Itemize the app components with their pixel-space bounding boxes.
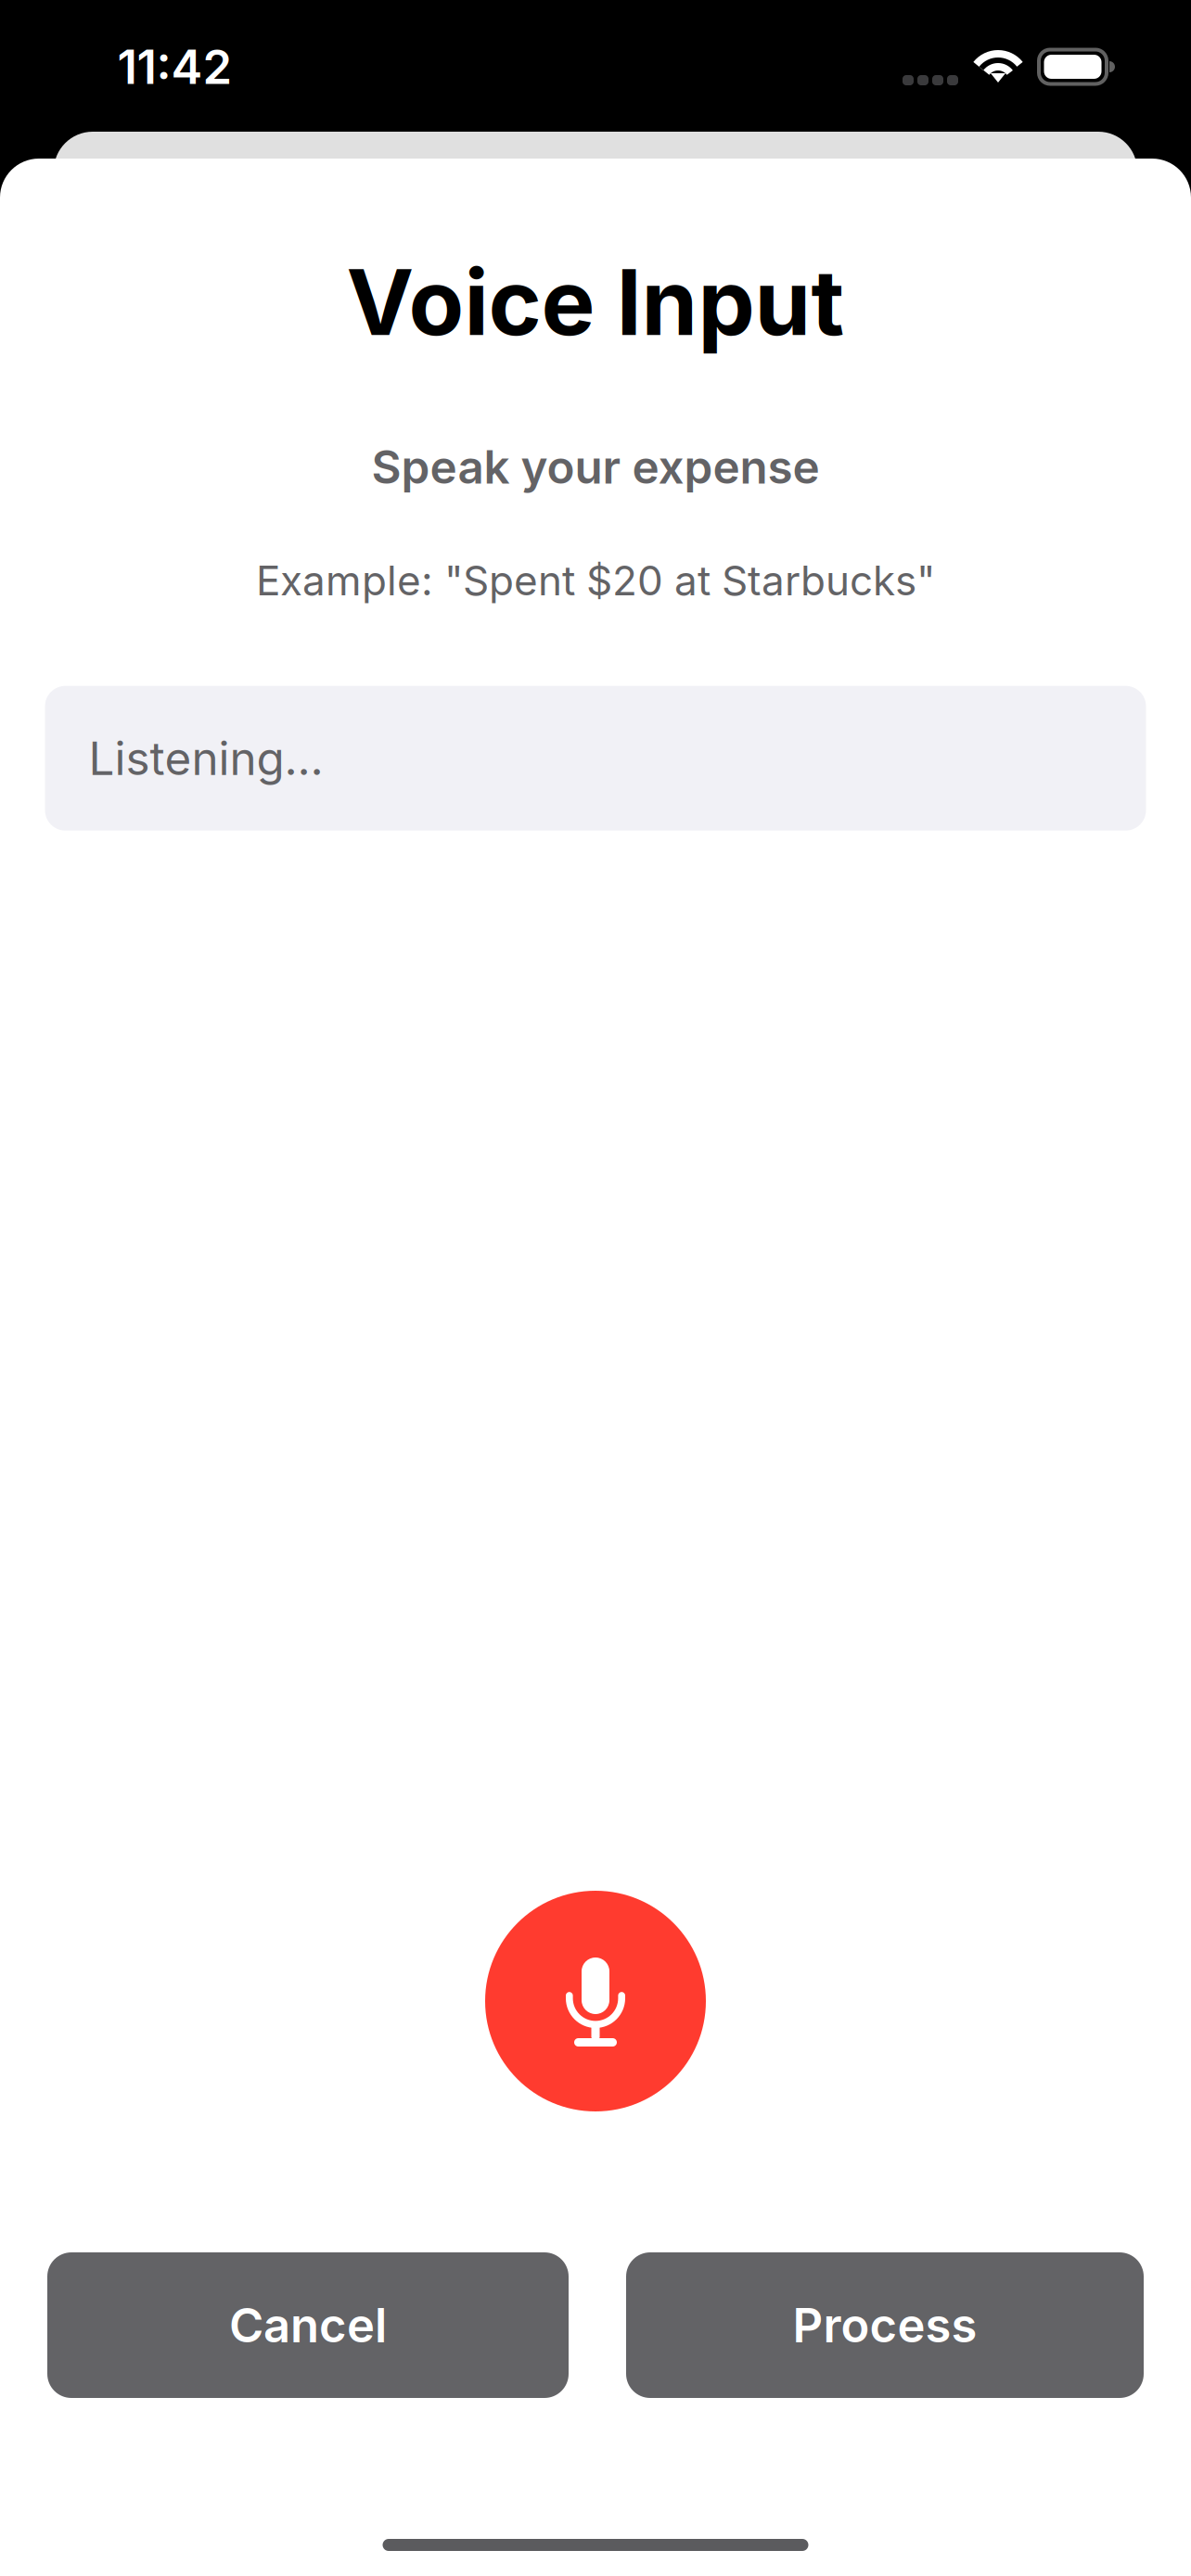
staticText: 11:42	[117, 38, 232, 95]
staticText: Process	[793, 2297, 977, 2354]
button[interactable]: Cancel	[47, 2252, 569, 2398]
staticText: Voice Input	[346, 248, 845, 357]
staticText: Speak your expense	[371, 439, 820, 495]
staticText: Listening...	[89, 731, 323, 786]
staticText: Example: "Spent $20 at Starbucks"	[256, 556, 935, 605]
button[interactable]: Process	[626, 2252, 1144, 2398]
staticText: Cancel	[229, 2297, 387, 2354]
button[interactable]: Record voice input	[485, 1891, 706, 2111]
